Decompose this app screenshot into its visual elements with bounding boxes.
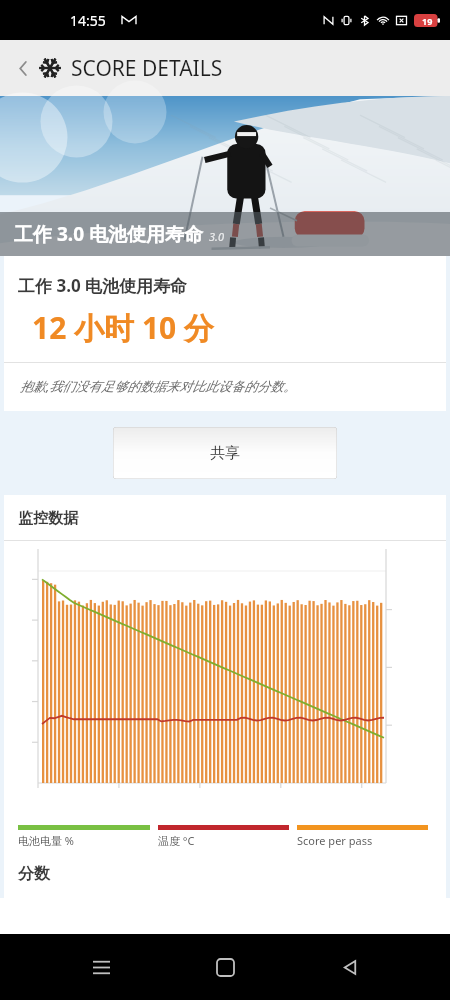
staticText: 监控数据 xyxy=(18,509,78,528)
staticText: 电池电量 % xyxy=(18,833,75,848)
button[interactable]: Home xyxy=(201,943,249,991)
staticText: 12 小时 10 分 xyxy=(32,307,215,348)
staticText: 14:55 xyxy=(70,11,106,30)
staticText: Score per pass xyxy=(297,833,373,848)
staticText: SCORE DETAILS xyxy=(71,54,223,83)
staticText: 共享 xyxy=(210,444,240,463)
button[interactable]: Recent apps xyxy=(77,943,125,991)
staticText: 3.0 xyxy=(209,229,224,244)
staticText: 工作 3.0 电池使用寿命 xyxy=(14,221,203,247)
staticText: 19 xyxy=(422,15,433,27)
staticText: 温度 °C xyxy=(158,833,195,848)
staticText: 抱歉,我们没有足够的数据来对比此设备的分数。 xyxy=(20,377,297,395)
button[interactable]: Back xyxy=(326,943,374,991)
button[interactable]: 共享 xyxy=(113,427,337,479)
staticText: 分数 xyxy=(18,864,50,884)
button[interactable]: Back xyxy=(8,53,38,83)
staticText: 工作 3.0 电池使用寿命 xyxy=(18,274,188,297)
